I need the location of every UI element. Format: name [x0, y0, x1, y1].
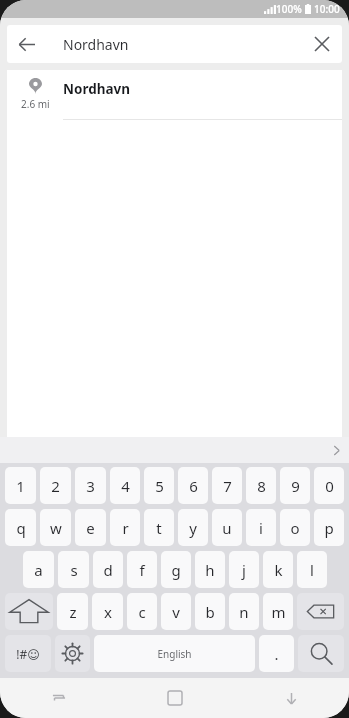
staticText: 0 [325, 476, 334, 496]
staticText: s [70, 560, 78, 580]
button[interactable]: k [263, 551, 293, 588]
button[interactable]: Search [298, 635, 344, 672]
staticText: j [242, 560, 246, 580]
button[interactable]: 2.6 mi [7, 70, 342, 120]
button[interactable]: h [195, 551, 225, 588]
staticText: e [86, 518, 95, 538]
staticText: Nordhavn [63, 35, 129, 54]
staticText: 1 [16, 476, 25, 496]
button[interactable]: 2 [40, 467, 71, 504]
staticText: 7 [223, 476, 232, 496]
staticText: 5 [155, 476, 164, 496]
staticText: c [138, 602, 146, 622]
button[interactable]: j [229, 551, 259, 588]
staticText: v [172, 602, 180, 622]
button[interactable]: 1 [5, 467, 36, 504]
staticText: u [222, 518, 232, 538]
staticText: n [239, 602, 249, 622]
staticText: !#☺ [16, 646, 40, 662]
button[interactable]: 0 [314, 467, 344, 504]
staticText: d [103, 560, 113, 580]
button[interactable]: m [263, 593, 293, 630]
button[interactable]: 4 [110, 467, 140, 504]
button[interactable]: w [40, 509, 71, 546]
staticText: 2.6 mi [21, 97, 50, 111]
button[interactable]: 3 [75, 467, 106, 504]
button[interactable]: More suggestions [323, 437, 349, 463]
button[interactable]: y [178, 509, 208, 546]
button[interactable]: c [127, 593, 157, 630]
staticText: r [122, 518, 129, 538]
button[interactable]: f [127, 551, 157, 588]
staticText: o [290, 518, 300, 538]
button[interactable]: !#☺ [5, 635, 51, 672]
staticText: 3 [86, 476, 95, 496]
button[interactable]: b [195, 593, 225, 630]
staticText: b [205, 602, 215, 622]
staticText: p [324, 518, 334, 538]
button[interactable]: d [93, 551, 123, 588]
button[interactable]: Recents [0, 678, 117, 718]
button[interactable]: Clear [302, 25, 342, 63]
staticText: 4 [121, 476, 130, 496]
button[interactable]: z [57, 593, 88, 630]
button[interactable]: Back [7, 25, 45, 63]
button[interactable]: s [58, 551, 89, 588]
button[interactable]: 5 [144, 467, 174, 504]
button[interactable]: t [144, 509, 174, 546]
staticText: m [271, 602, 286, 622]
staticText: . [274, 644, 279, 664]
button[interactable]: 9 [280, 467, 310, 504]
button[interactable]: Backspace [297, 593, 344, 630]
button[interactable]: u [212, 509, 242, 546]
button[interactable]: Home [117, 678, 233, 718]
button[interactable]: . [259, 635, 294, 672]
staticText: y [189, 518, 197, 538]
button[interactable]: n [229, 593, 259, 630]
staticText: l [310, 560, 314, 580]
button[interactable]: Keyboard settings [55, 635, 90, 672]
staticText: 10:00 [314, 2, 340, 16]
button[interactable]: 8 [246, 467, 276, 504]
staticText: 6 [189, 476, 198, 496]
button[interactable]: x [92, 593, 123, 630]
staticText: z [69, 602, 77, 622]
button[interactable]: English [94, 635, 255, 672]
button[interactable]: Shift [5, 593, 53, 630]
button[interactable]: 7 [212, 467, 242, 504]
button[interactable]: q [5, 509, 36, 546]
staticText: 2 [51, 476, 60, 496]
staticText: i [259, 518, 263, 538]
staticText: f [139, 560, 145, 580]
staticText: x [104, 602, 112, 622]
staticText: h [205, 560, 215, 580]
staticText: k [274, 560, 283, 580]
button[interactable]: v [161, 593, 191, 630]
button[interactable]: p [314, 509, 344, 546]
button[interactable]: o [280, 509, 310, 546]
button[interactable]: a [23, 551, 54, 588]
staticText: g [171, 560, 181, 580]
staticText: 9 [291, 476, 300, 496]
button[interactable]: Hide keyboard [233, 678, 349, 718]
staticText: 8 [257, 476, 266, 496]
staticText: Nordhavn [63, 80, 131, 98]
button[interactable]: 6 [178, 467, 208, 504]
staticText: w [50, 518, 62, 538]
button[interactable]: r [110, 509, 140, 546]
staticText: English [157, 647, 192, 661]
button[interactable]: l [297, 551, 327, 588]
button[interactable]: i [246, 509, 276, 546]
staticText: q [16, 518, 26, 538]
staticText: t [156, 518, 162, 538]
button[interactable]: g [161, 551, 191, 588]
button[interactable]: e [75, 509, 106, 546]
staticText: 100% [276, 2, 302, 16]
staticText: a [34, 560, 43, 580]
